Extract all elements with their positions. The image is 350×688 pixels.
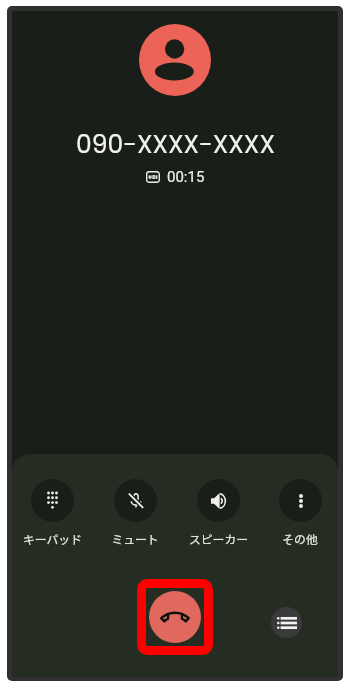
button[interactable]: Call log (271, 607, 302, 638)
staticText: スピーカー (189, 530, 248, 547)
staticText: 00:15 (167, 168, 205, 186)
staticText: その他 (282, 530, 318, 547)
staticText: 090-XXXX-XXXX (76, 127, 275, 162)
staticText: ミュート (111, 530, 159, 547)
button[interactable]: その他 (259, 479, 338, 547)
button[interactable]: End call (137, 579, 213, 655)
staticText: キーパッド (23, 530, 82, 547)
button[interactable]: キーパッド (12, 479, 93, 547)
button[interactable]: ミュート (94, 479, 176, 547)
button[interactable]: スピーカー (177, 479, 259, 547)
